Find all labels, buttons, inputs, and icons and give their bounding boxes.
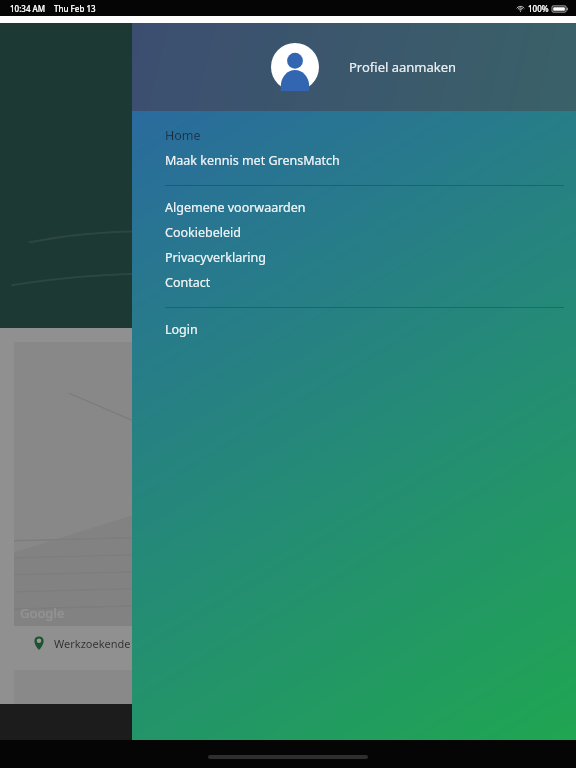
button[interactable]: Contact — [132, 270, 576, 295]
staticText: Google — [20, 604, 65, 622]
staticText: Profiel aanmaken — [349, 58, 457, 76]
button[interactable]: Profiel aanmaken — [132, 23, 576, 111]
staticText: Home — [165, 127, 201, 144]
button[interactable]: Home — [132, 123, 576, 148]
staticText: Algemene voorwaarden — [165, 199, 306, 216]
staticText: Login — [165, 321, 198, 338]
button[interactable]: Privacyverklaring — [132, 245, 576, 270]
staticText: Cookiebeleid — [165, 224, 241, 241]
button[interactable]: Maak kennis met GrensMatch — [132, 148, 576, 173]
staticText: 10:34 AM — [10, 3, 46, 14]
staticText: Contact — [165, 274, 211, 291]
button[interactable]: Login — [132, 317, 576, 342]
button[interactable]: Cookiebeleid — [132, 220, 576, 245]
staticText: Maak kennis met GrensMatch — [165, 152, 340, 169]
staticText: Werkzoekende — [54, 636, 131, 651]
staticText: Privacyverklaring — [165, 249, 266, 266]
button[interactable]: Algemene voorwaarden — [132, 195, 576, 220]
staticText: Thu Feb 13 — [54, 3, 96, 14]
staticText: 100% — [528, 3, 549, 14]
